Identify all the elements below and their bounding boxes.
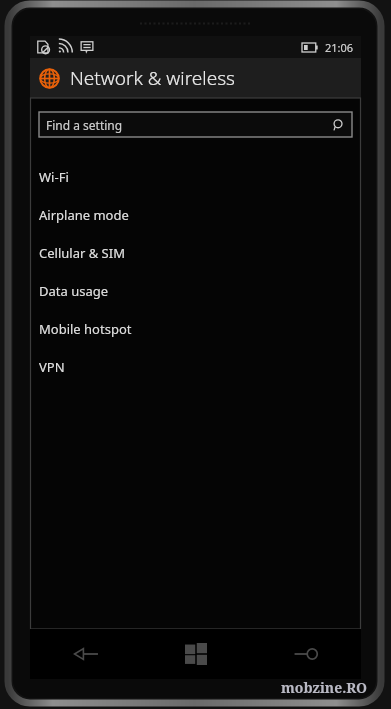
button[interactable]: Data usage bbox=[30, 272, 361, 310]
staticText: Data usage bbox=[39, 282, 109, 300]
button[interactable]: Back bbox=[30, 629, 141, 679]
button[interactable]: VPN bbox=[30, 348, 361, 386]
button[interactable]: Find a setting bbox=[39, 112, 352, 137]
button[interactable]: Search bbox=[251, 629, 361, 679]
staticText: VPN bbox=[39, 358, 65, 376]
staticText: Find a setting bbox=[46, 117, 333, 133]
staticText: Network & wireless bbox=[70, 65, 235, 91]
button[interactable]: Start bbox=[141, 629, 251, 679]
button[interactable]: Wi-Fi bbox=[30, 158, 361, 196]
button[interactable]: Mobile hotspot bbox=[30, 310, 361, 348]
staticText: mobzine.RO bbox=[281, 678, 367, 697]
button[interactable]: Airplane mode bbox=[30, 196, 361, 234]
staticText: Mobile hotspot bbox=[39, 320, 132, 338]
staticText: Airplane mode bbox=[39, 206, 129, 224]
staticText: Cellular & SIM bbox=[39, 244, 125, 262]
staticText: Wi-Fi bbox=[39, 168, 69, 186]
button[interactable]: Cellular & SIM bbox=[30, 234, 361, 272]
staticText: 21:06 bbox=[325, 40, 354, 55]
